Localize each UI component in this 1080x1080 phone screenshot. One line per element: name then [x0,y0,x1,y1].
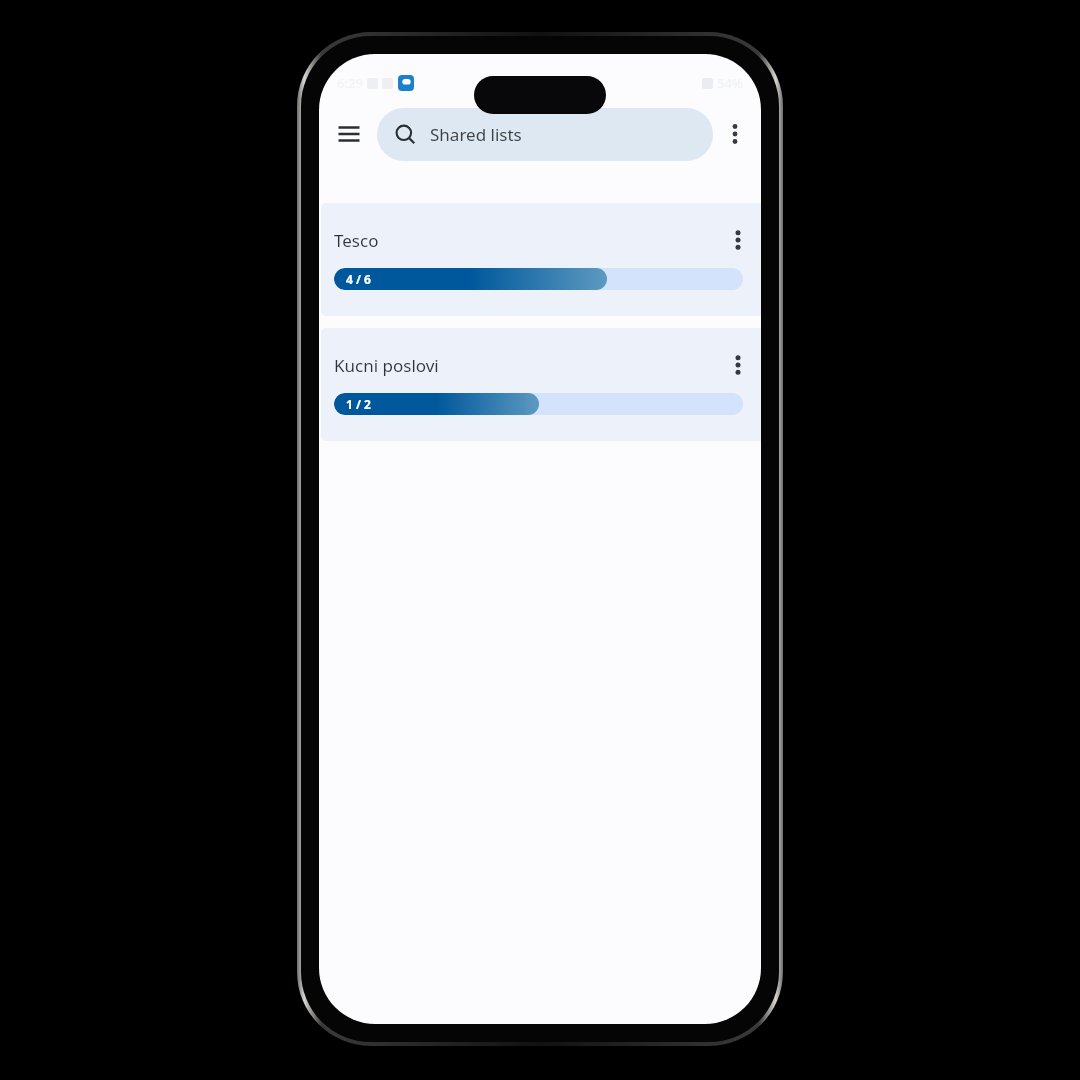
button[interactable]: List options for Kucni poslovi [719,346,757,384]
staticText: Tesco [334,229,719,252]
staticText: Shared lists [430,123,522,146]
staticText: 54% [717,74,743,92]
staticText: 1 / 2 [346,396,371,412]
button[interactable]: Shared lists [377,108,713,161]
button[interactable]: Open navigation menu [327,112,371,156]
button[interactable]: Kucni poslovi [321,328,761,441]
button[interactable]: More options [713,112,757,156]
staticText: Kucni poslovi [334,354,719,377]
staticText: 4 / 6 [346,271,371,287]
button[interactable]: Tesco [321,203,761,316]
button[interactable]: List options for Tesco [719,221,757,259]
staticText: 6:29 [337,74,363,92]
